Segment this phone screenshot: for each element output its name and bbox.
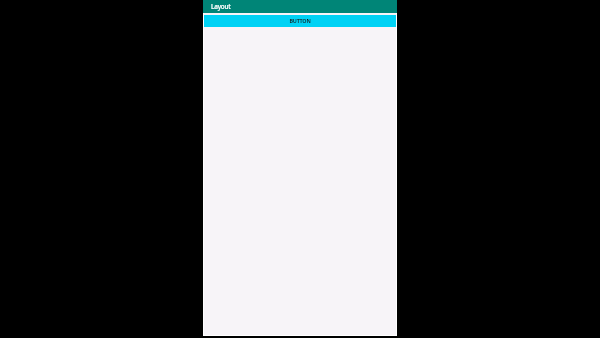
button[interactable]: BUTTON: [204, 15, 396, 27]
staticText: Layout: [211, 2, 231, 11]
staticText: BUTTON: [289, 17, 311, 24]
